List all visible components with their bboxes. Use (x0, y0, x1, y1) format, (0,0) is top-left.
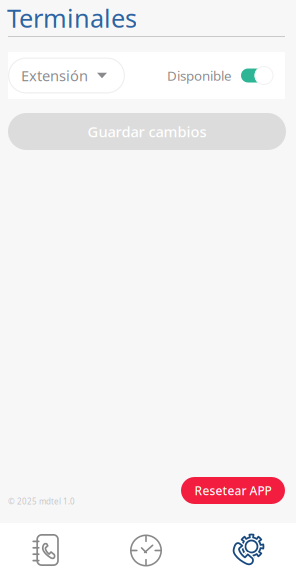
button[interactable]: Contactos (0, 531, 99, 565)
staticText: Extensión (21, 66, 88, 85)
button[interactable]: Recientes (99, 532, 197, 564)
button[interactable]: Disponible (232, 65, 274, 85)
button[interactable]: Ajustes (197, 531, 296, 565)
button[interactable]: Guardar cambios (8, 113, 286, 150)
staticText: Disponible (167, 67, 232, 84)
button[interactable]: Resetear APP (181, 477, 285, 504)
button[interactable]: Extensión (8, 57, 125, 93)
staticText: © 2025 mdtel 1.0 (8, 496, 75, 507)
staticText: Resetear APP (194, 482, 271, 498)
staticText: Terminales (7, 1, 137, 35)
staticText: Guardar cambios (87, 122, 206, 141)
